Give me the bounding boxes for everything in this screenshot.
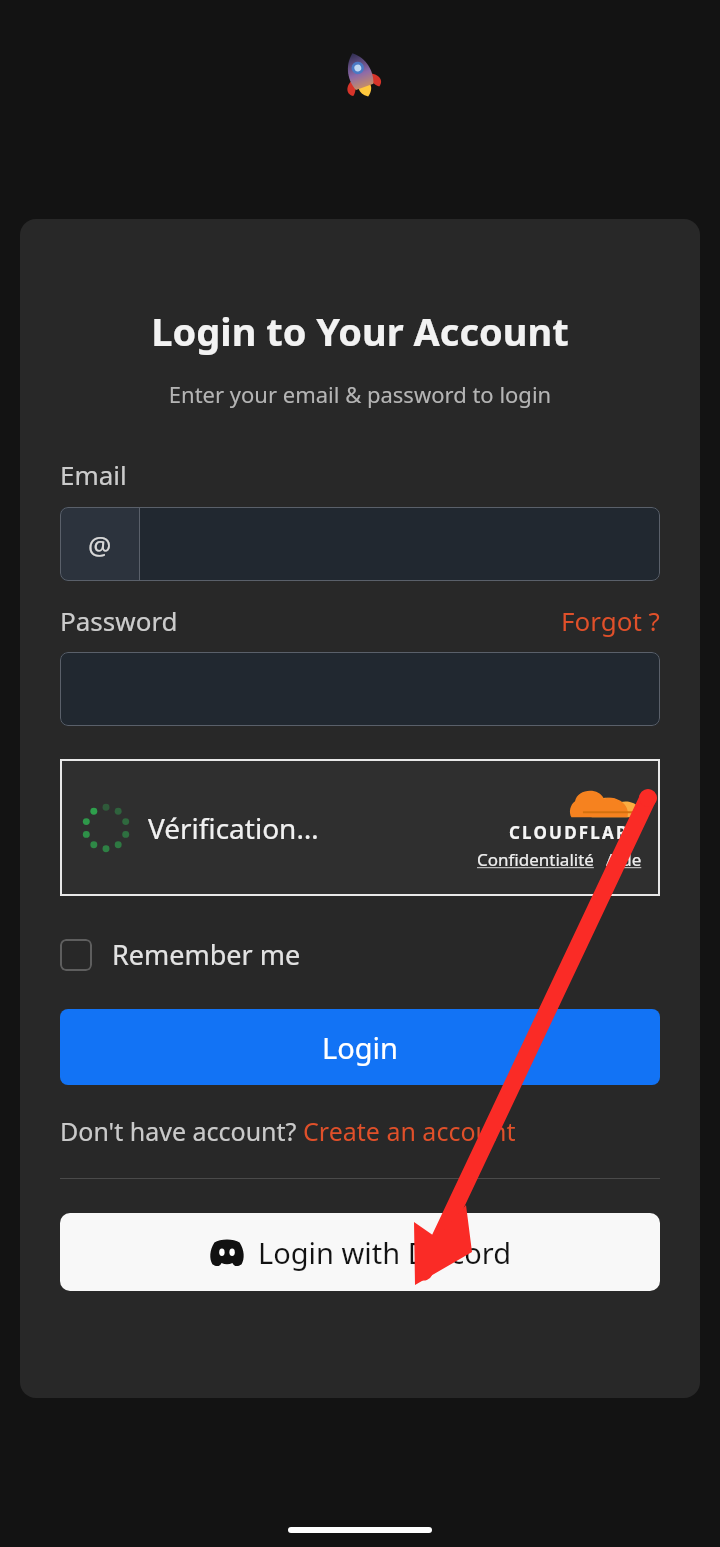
button[interactable]: @ bbox=[60, 507, 660, 581]
button[interactable]: Login bbox=[60, 1009, 660, 1085]
staticText: Create an account bbox=[303, 1114, 516, 1148]
button[interactable]: Confidentialité bbox=[477, 848, 594, 871]
staticText: Remember me bbox=[112, 936, 301, 973]
button[interactable]: Aide bbox=[606, 848, 642, 871]
button[interactable]: Cloudflare verification bbox=[60, 759, 660, 896]
button[interactable] bbox=[60, 652, 660, 726]
staticText: Vérification… bbox=[148, 809, 319, 847]
staticText: Login to Your Account bbox=[60, 305, 660, 357]
staticText: @ bbox=[88, 527, 112, 562]
staticText: Enter your email & password to login bbox=[60, 379, 660, 409]
staticText: Password bbox=[60, 603, 178, 638]
staticText: Login bbox=[322, 1028, 398, 1067]
button[interactable]: Forgot ? bbox=[561, 603, 660, 638]
staticText: Login with Discord bbox=[258, 1233, 511, 1272]
staticText: Don't have account? bbox=[60, 1114, 303, 1148]
button[interactable]: Login with Discord bbox=[60, 1213, 660, 1291]
staticText: Email bbox=[60, 457, 127, 492]
staticText: Forgot ? bbox=[561, 603, 660, 638]
button[interactable]: Create an account bbox=[303, 1114, 516, 1148]
staticText: CLOUDFLARE bbox=[509, 821, 642, 844]
button[interactable]: Remember me bbox=[60, 936, 301, 973]
